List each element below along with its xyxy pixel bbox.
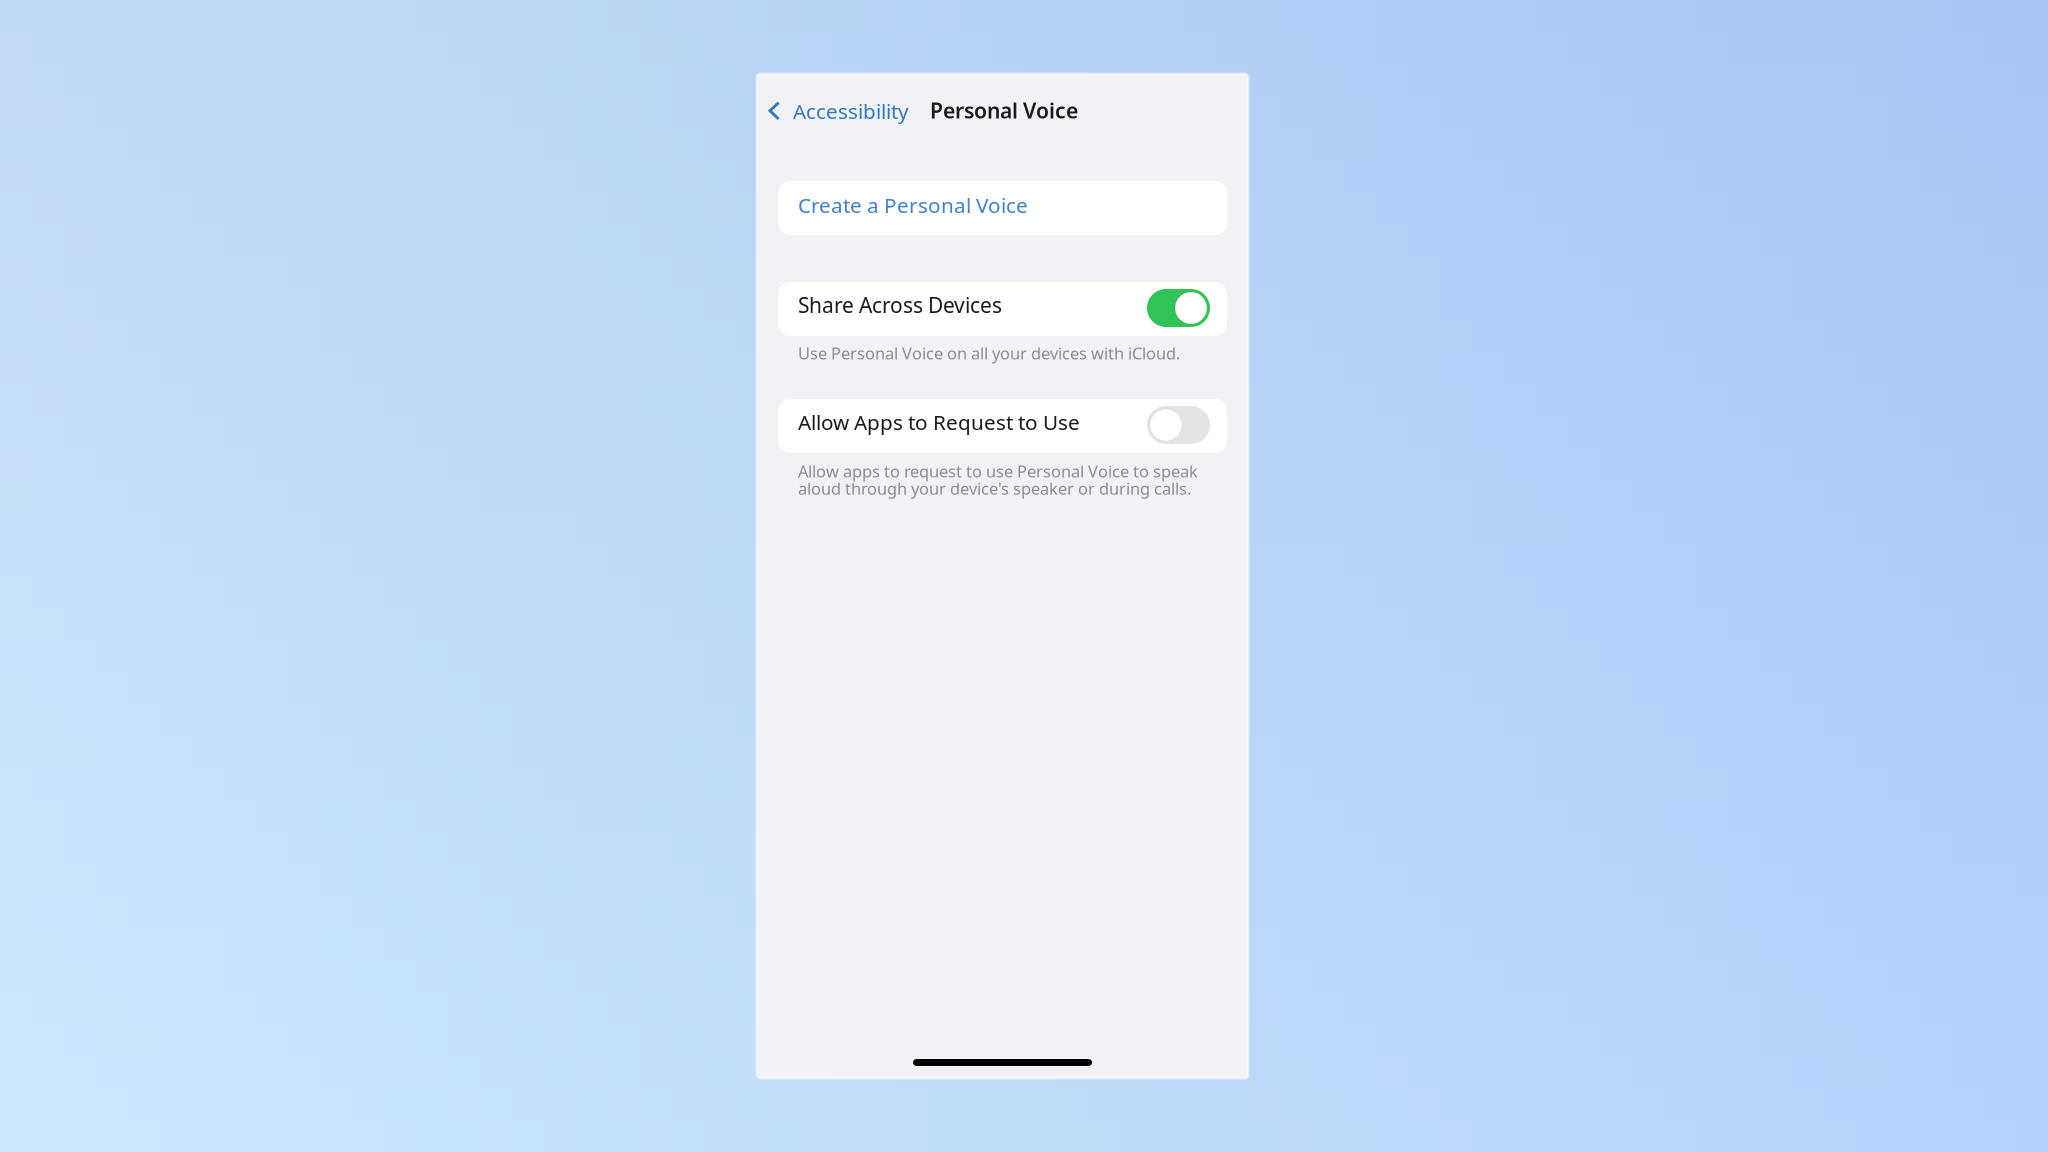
staticText: Accessibility: [793, 97, 908, 125]
button[interactable]: Create a Personal Voice: [778, 181, 1227, 235]
button[interactable]: Share Across Devices: [778, 282, 1227, 336]
staticText: Use Personal Voice on all your devices w…: [798, 342, 1180, 364]
button[interactable]: Back to Accessibility: [768, 92, 912, 130]
staticText: Personal Voice: [930, 96, 1078, 125]
staticText: Allow apps to request to use Personal Vo…: [798, 460, 1198, 500]
button[interactable]: Allow Apps to Request to Use: [778, 399, 1227, 453]
staticText: Allow Apps to Request to Use: [798, 408, 1080, 436]
staticText: Create a Personal Voice: [798, 191, 1028, 219]
staticText: Share Across Devices: [798, 291, 1002, 319]
